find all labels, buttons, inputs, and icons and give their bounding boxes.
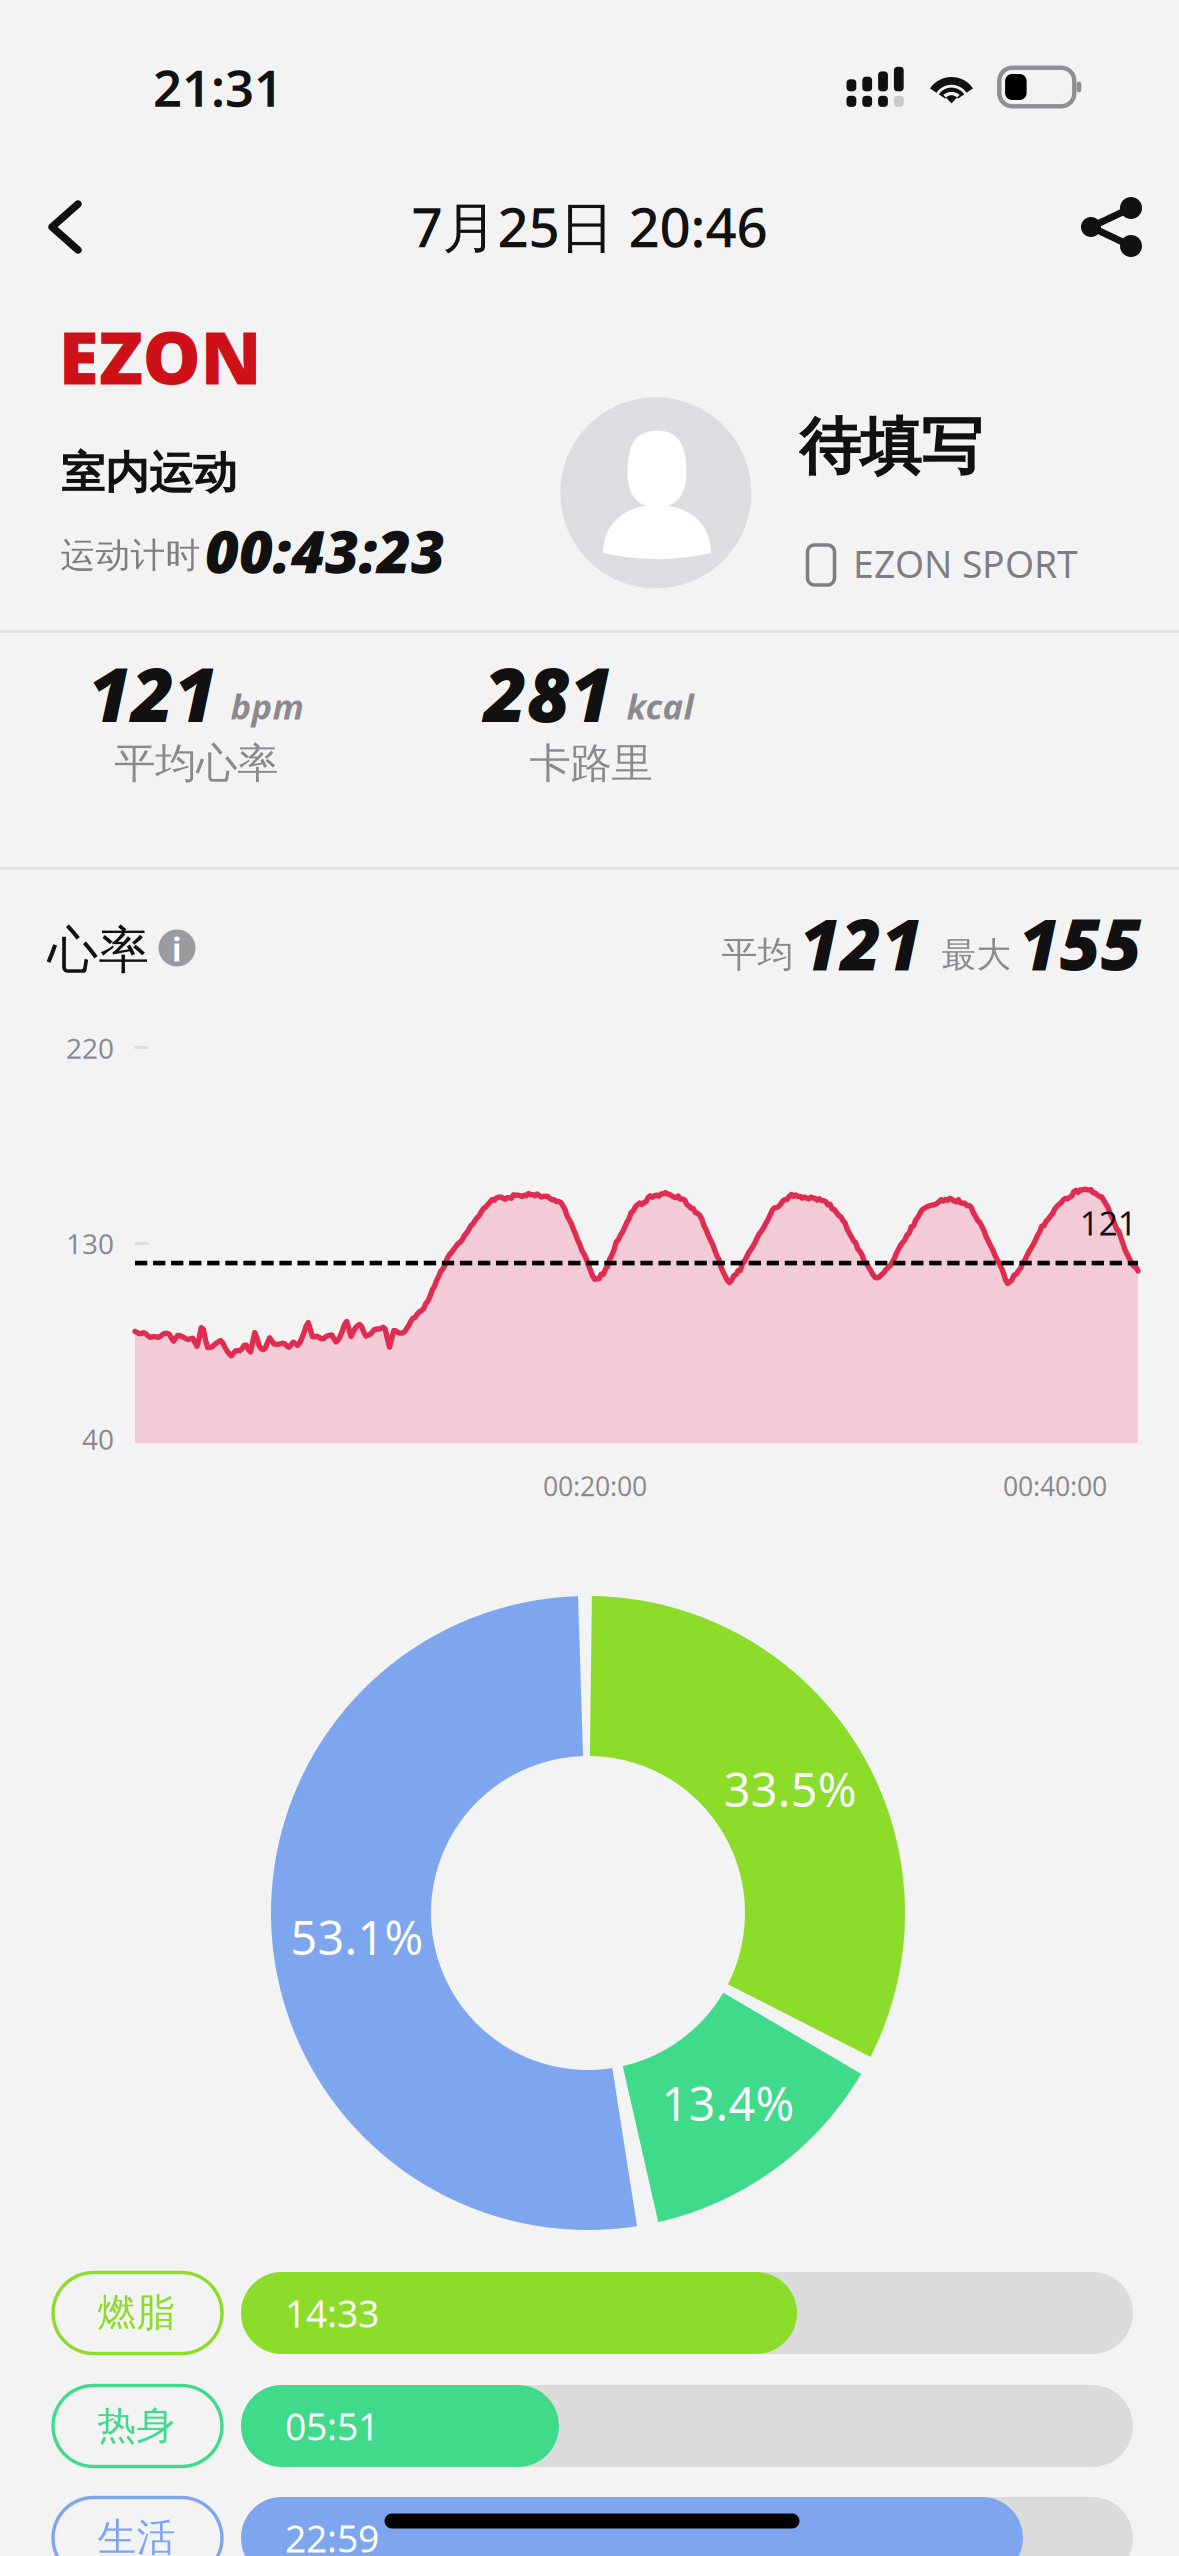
staticText: i [172,928,182,970]
staticText: 130 [66,1225,114,1262]
staticText: 155 [1019,896,1142,990]
staticText: 281 [484,643,613,743]
staticText: 05:51 [285,2401,379,2451]
staticText: 220 [66,1029,114,1067]
staticText: 运动计时 [60,534,200,577]
staticText: 7月25日 20:46 [411,190,767,262]
staticText: 00:43:23 [205,511,445,589]
staticText: kcal [626,683,693,729]
staticText: 最大 [941,934,1011,976]
button[interactable]: Heart rate info [142,913,212,983]
staticText: bpm [230,683,303,729]
staticText: 卡路里 [529,738,652,789]
staticText: 22:59 [285,2513,379,2556]
staticText: 待填写 [799,409,982,485]
staticText: 121 [1080,1200,1137,1245]
staticText: 00:20:00 [543,1468,647,1504]
staticText: 53.1% [290,1906,423,1968]
staticText: 14:33 [285,2288,379,2338]
staticText: 21:31 [153,53,283,121]
button[interactable]: Share [1056,172,1166,282]
staticText: 燃脂 [97,2289,175,2336]
staticText: 心率 [47,919,149,981]
staticText: 121 [88,643,217,743]
staticText: 平均 [722,932,794,977]
staticText: EZON SPORT [853,539,1078,588]
staticText: 121 [799,896,922,990]
staticText: 平均心率 [114,738,278,789]
staticText: 室内运动 [61,446,237,500]
staticText: 00:40:00 [1003,1468,1107,1504]
staticText: 生活 [97,2514,175,2556]
staticText: 热身 [97,2402,175,2449]
button[interactable]: Back [10,172,120,282]
staticText: 33.5% [724,1758,857,1820]
staticText: EZON [58,307,261,405]
staticText: 40 [82,1420,114,1458]
staticText: 13.4% [661,2072,794,2134]
